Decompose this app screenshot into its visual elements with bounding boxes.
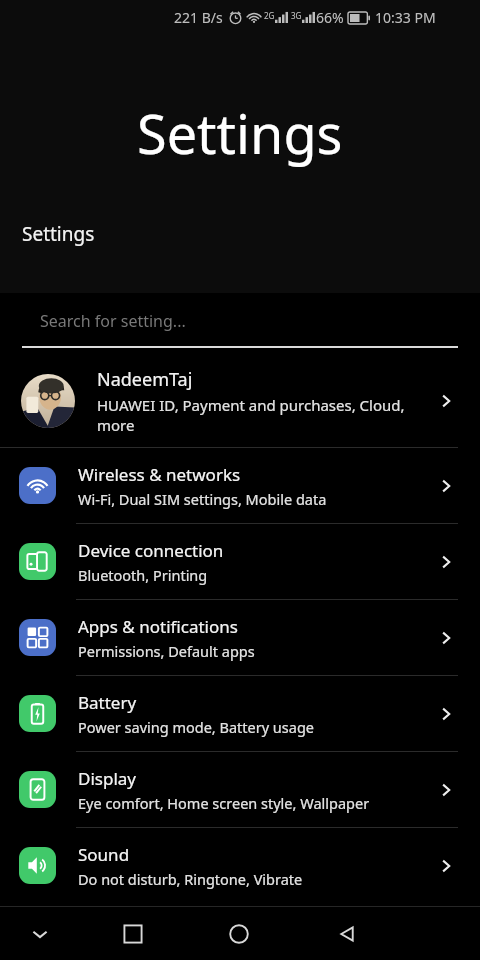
button[interactable]: Recent apps <box>105 907 161 960</box>
staticText: Device connection <box>78 539 224 562</box>
staticText: Settings <box>137 96 343 170</box>
staticText: Wireless & networks <box>78 463 241 486</box>
staticText: Settings <box>22 221 95 247</box>
staticText: Battery <box>78 691 137 714</box>
button[interactable]: Device connection <box>0 524 480 599</box>
button[interactable]: Sound <box>0 828 480 903</box>
button[interactable]: Display <box>0 752 480 827</box>
button[interactable]: Home <box>211 907 267 960</box>
button[interactable]: Wireless & networks <box>0 448 480 523</box>
staticText: Sound <box>78 843 130 866</box>
button[interactable]: Apps & notifications <box>0 600 480 675</box>
staticText: 2G <box>264 10 275 21</box>
staticText: Apps & notifications <box>78 615 238 638</box>
staticText: Do not disturb, Ringtone, Vibrate <box>78 869 303 889</box>
staticText: Power saving mode, Battery usage <box>78 717 315 737</box>
staticText: 66% <box>316 8 344 27</box>
staticText: Search for setting... <box>40 310 186 332</box>
staticText: HUAWEI ID, Payment and purchases, Cloud,… <box>97 395 428 435</box>
staticText: Wi-Fi, Dual SIM settings, Mobile data <box>78 489 327 509</box>
staticText: 3G <box>291 10 302 21</box>
button[interactable]: Battery <box>0 676 480 751</box>
staticText: NadeemTaj <box>97 367 193 392</box>
button[interactable]: Hide keyboard <box>12 907 68 960</box>
staticText: Display <box>78 767 136 790</box>
staticText: Bluetooth, Printing <box>78 565 208 585</box>
staticText: Eye comfort, Home screen style, Wallpape… <box>78 793 370 813</box>
button[interactable]: Back <box>319 907 375 960</box>
button[interactable]: Search for setting... <box>0 293 480 355</box>
staticText: 221 B/s <box>174 8 223 27</box>
staticText: 10:33 PM <box>375 8 436 27</box>
staticText: Permissions, Default apps <box>78 641 255 661</box>
button[interactable]: NadeemTaj <box>0 355 480 447</box>
